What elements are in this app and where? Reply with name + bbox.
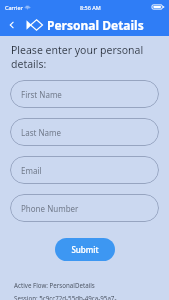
button[interactable]: Email: [10, 156, 159, 184]
staticText: Email: [21, 165, 42, 176]
button[interactable]: Back: [3, 16, 21, 34]
staticText: Personal Details: [47, 17, 144, 33]
staticText: Carrier: [5, 4, 23, 11]
staticText: Please enter your personal details:: [11, 43, 163, 71]
staticText: Submit: [71, 244, 99, 255]
button[interactable]: Submit: [55, 238, 115, 261]
staticText: Last Name: [21, 127, 62, 138]
button[interactable]: First Name: [10, 80, 159, 108]
staticText: 8:56 AM: [80, 4, 101, 11]
staticText: First Name: [21, 89, 62, 100]
button[interactable]: Last Name: [10, 118, 159, 146]
button[interactable]: Phone Number: [10, 194, 159, 222]
staticText: Session: 5c9cc72d-55db-49ca-95a7- b78578…: [14, 294, 117, 300]
staticText: Active Flow: PersonalDetails: [14, 281, 95, 289]
staticText: Phone Number: [21, 203, 79, 214]
